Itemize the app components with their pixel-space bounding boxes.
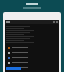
button[interactable] (6, 67, 21, 70)
button[interactable] (5, 60, 59, 65)
button[interactable] (5, 45, 59, 50)
button[interactable] (5, 50, 59, 55)
button[interactable] (5, 65, 59, 70)
button[interactable] (5, 55, 59, 60)
